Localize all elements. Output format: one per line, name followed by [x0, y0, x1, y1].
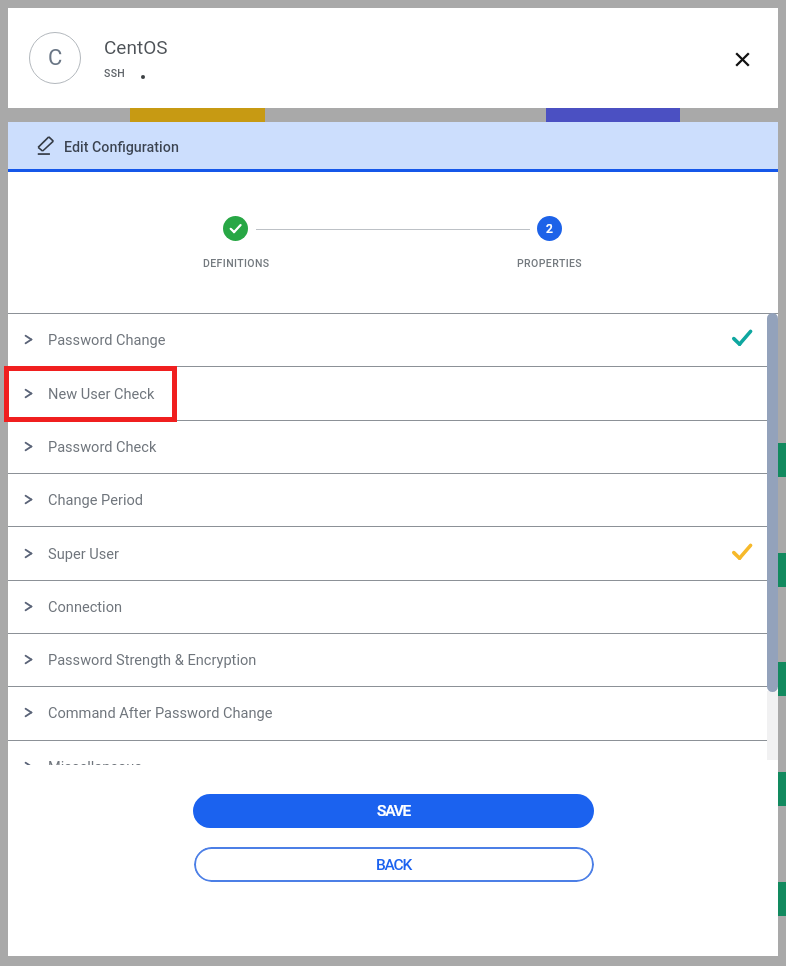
button[interactable]: Miscellaneous	[8, 741, 778, 793]
staticText: Password Strength & Encryption	[48, 651, 257, 668]
button[interactable]: Change Period	[8, 474, 778, 526]
button[interactable]: Step 1 Definitions, completed	[223, 216, 248, 241]
staticText: SSH	[104, 67, 126, 79]
staticText: Edit Configuration	[64, 139, 179, 156]
staticText: Change Period	[48, 491, 143, 508]
button[interactable]: Step 2 Properties	[537, 216, 562, 241]
button[interactable]: Close	[722, 39, 762, 79]
button[interactable]: Password Check	[8, 421, 778, 473]
button[interactable]: New User Check	[8, 368, 778, 420]
staticText: Miscellaneous	[48, 758, 142, 775]
staticText: Super User	[48, 545, 119, 562]
staticText: PROPERTIES	[517, 257, 583, 269]
staticText: Password Check	[48, 438, 157, 455]
button[interactable]: Command After Password Change	[8, 687, 778, 739]
button[interactable]: Super User	[8, 528, 778, 580]
staticText: 2	[546, 222, 553, 236]
staticText: SAVE	[377, 802, 411, 820]
staticText: New User Check	[48, 385, 155, 402]
button[interactable]: BACK	[194, 847, 594, 882]
button[interactable]: Connection	[8, 581, 778, 633]
staticText: CentOS	[104, 36, 168, 58]
button[interactable]: Password Change	[8, 314, 778, 366]
staticText: DEFINITIONS	[203, 257, 270, 269]
button[interactable]: Edit Configuration	[8, 122, 778, 169]
staticText: C	[48, 45, 63, 71]
staticText: Password Change	[48, 331, 166, 348]
button[interactable]: Password Strength & Encryption	[8, 634, 778, 686]
staticText: BACK	[376, 856, 412, 874]
button[interactable]: SAVE	[193, 794, 594, 828]
staticText: Command After Password Change	[48, 704, 273, 721]
staticText: Connection	[48, 598, 123, 615]
